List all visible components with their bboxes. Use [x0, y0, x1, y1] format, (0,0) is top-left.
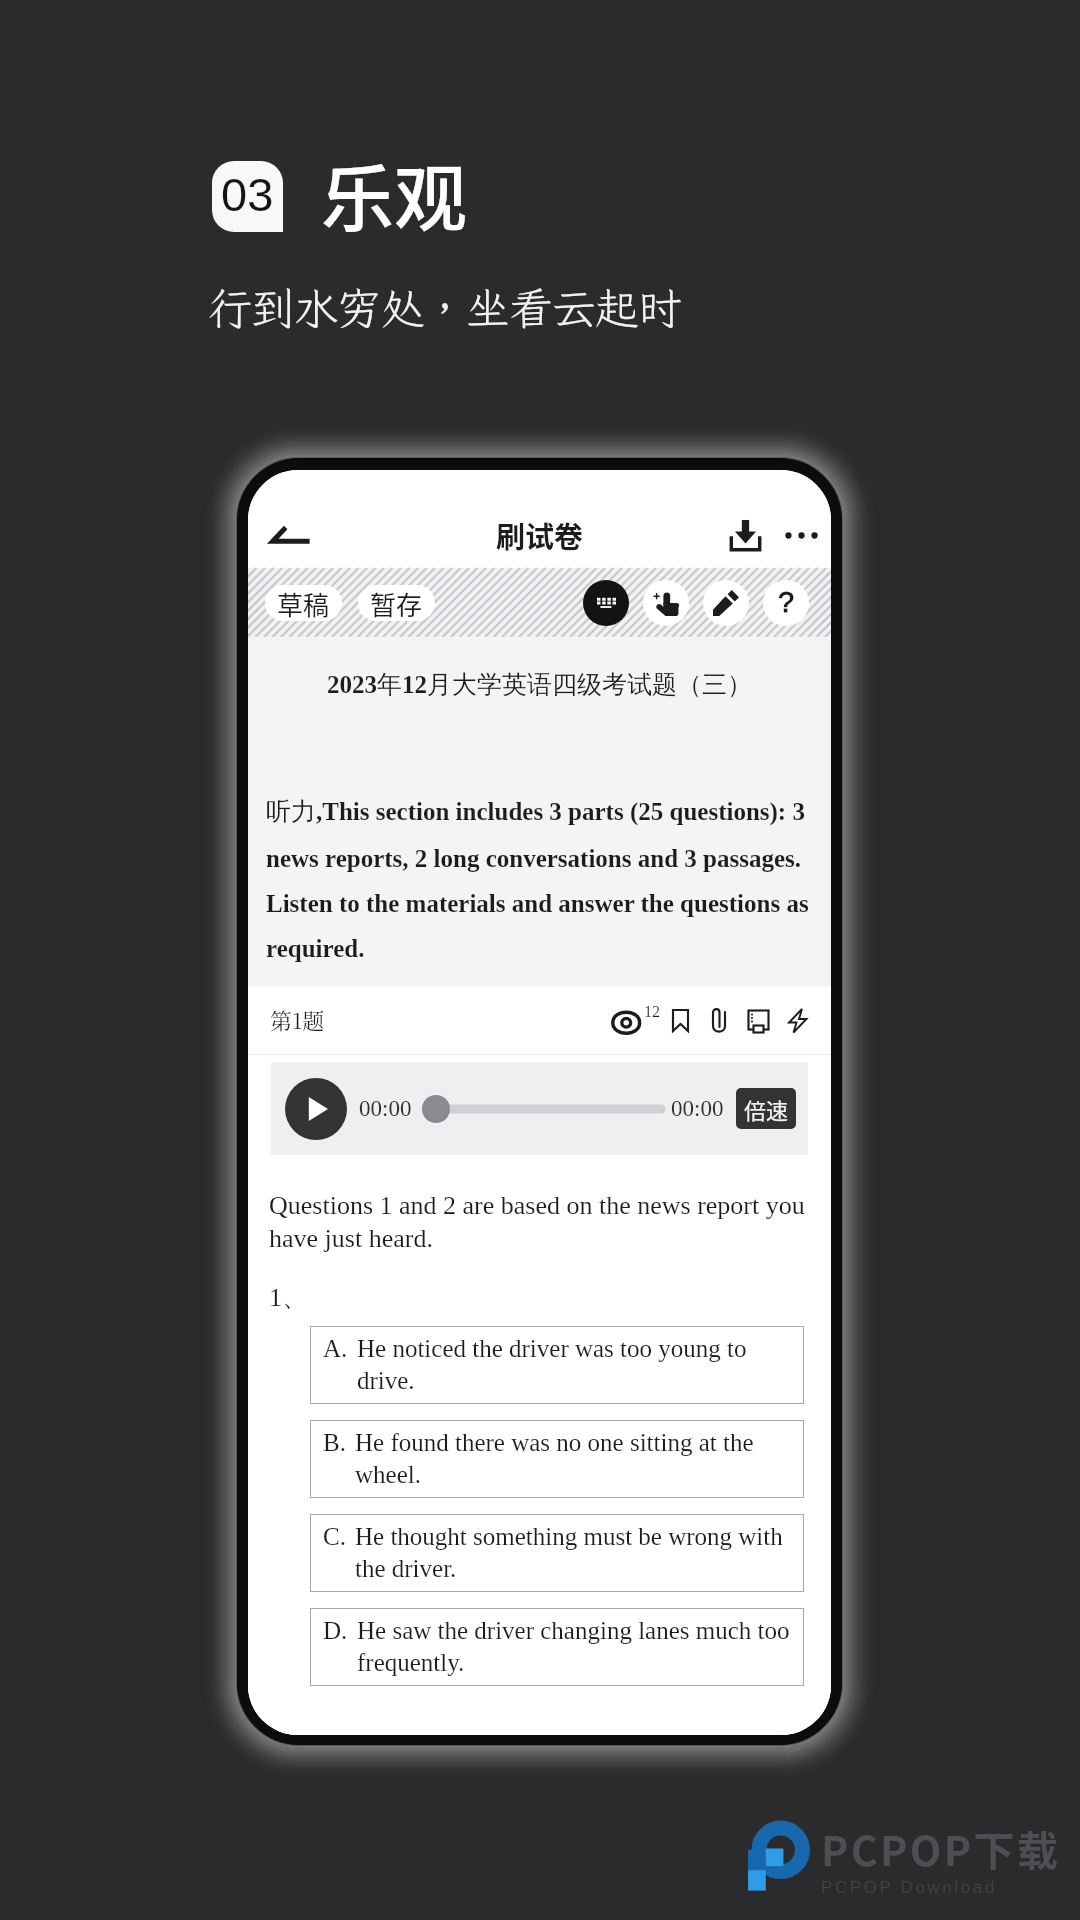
staticText: 听力,This section includes 3 parts (25 que…	[266, 796, 811, 962]
button[interactable]: Keyboard	[583, 580, 629, 626]
button[interactable]: A.	[310, 1326, 804, 1404]
button[interactable]: Annotate	[703, 580, 749, 626]
staticText: C.	[323, 1523, 346, 1551]
staticText: 00:00	[359, 1096, 412, 1121]
staticText: ?	[778, 586, 795, 618]
staticText: 2023年12月大学英语四级考试题（三）	[248, 669, 831, 700]
staticText: He thought something must be wrong with …	[355, 1523, 801, 1582]
staticText: 暂存	[370, 585, 423, 621]
button[interactable]: 草稿	[265, 585, 342, 621]
button[interactable]: Attachment	[700, 997, 739, 1043]
staticText: He found there was no one sitting at the…	[355, 1429, 801, 1488]
button[interactable]: Download	[718, 508, 772, 562]
staticText: 行到水穷处，坐看云起时	[208, 279, 681, 337]
button[interactable]: B.	[310, 1420, 804, 1498]
button[interactable]: 倍速	[736, 1088, 796, 1129]
button[interactable]: D.	[310, 1608, 804, 1686]
button[interactable]: 暂存	[358, 585, 435, 621]
staticText: PCPOP Download	[821, 1878, 997, 1897]
staticText: PCPOP下载	[821, 1818, 1061, 1877]
staticText: 1、	[269, 1281, 308, 1314]
staticText: He saw the driver changing lanes much to…	[357, 1617, 801, 1676]
staticText: Questions 1 and 2 are based on the news …	[269, 1191, 809, 1253]
staticText: 03	[221, 168, 274, 221]
staticText: 乐观	[321, 140, 467, 246]
staticText: 00:00	[671, 1096, 724, 1121]
staticText: B.	[323, 1429, 346, 1457]
button[interactable]: Notes	[739, 997, 778, 1043]
staticText: 草稿	[277, 585, 330, 621]
button[interactable]: Play	[285, 1078, 347, 1140]
staticText: D.	[323, 1617, 348, 1645]
button[interactable]: Quick actions	[778, 997, 817, 1043]
staticText: 刷试卷	[496, 514, 584, 556]
staticText: He noticed the driver was too young to d…	[357, 1335, 801, 1394]
staticText: A.	[323, 1335, 348, 1363]
button[interactable]: Help	[763, 580, 809, 626]
button[interactable]: C.	[310, 1514, 804, 1592]
staticText: 第1题	[270, 1004, 325, 1036]
button[interactable]: More options	[774, 508, 828, 562]
button[interactable]: Bookmark	[661, 997, 700, 1043]
staticText: 12	[644, 1003, 660, 1021]
staticText: 倍速	[744, 1093, 789, 1125]
button[interactable]: Select	[643, 580, 689, 626]
button[interactable]: Views 12	[604, 997, 661, 1043]
button[interactable]: Back	[262, 505, 320, 563]
